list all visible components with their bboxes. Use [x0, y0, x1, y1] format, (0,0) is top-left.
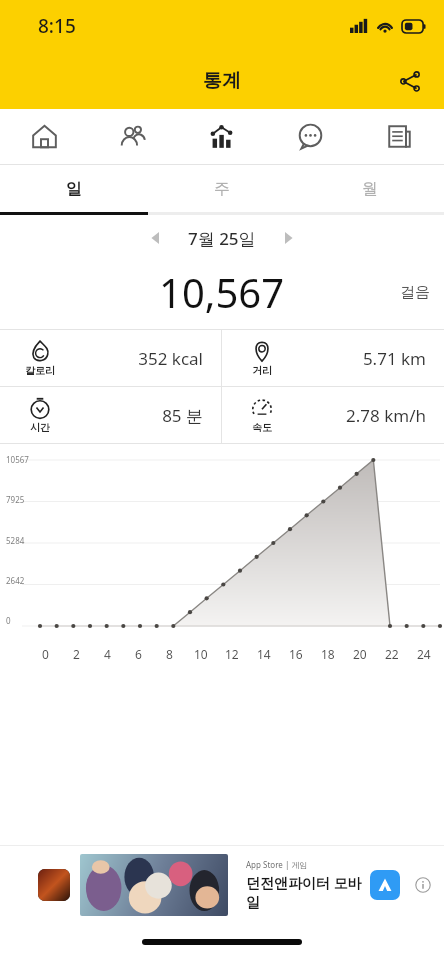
button[interactable]: App Store | 게임 [0, 846, 444, 924]
staticText: 16 [289, 646, 303, 662]
staticText: 2.78 km/h [284, 404, 426, 427]
button[interactable]: News [355, 109, 444, 164]
button[interactable]: Home [0, 109, 88, 164]
staticText: 5.71 km [284, 347, 426, 370]
button[interactable]: 거리 [222, 330, 444, 386]
staticText: 일 [66, 179, 82, 199]
button[interactable]: 일 [0, 165, 148, 212]
staticText: 5284 [6, 535, 25, 546]
staticText: 10567 [6, 454, 29, 465]
staticText: 8:15 [38, 13, 76, 39]
staticText: 걸음 [400, 283, 430, 302]
staticText: 시간 [30, 421, 50, 434]
staticText: 속도 [252, 421, 272, 434]
staticText: 던전앤파이터 모바일 [246, 873, 370, 911]
staticText: 85 분 [62, 404, 203, 427]
button[interactable]: 칼로리 [0, 330, 221, 386]
staticText: 7925 [6, 494, 25, 505]
button[interactable]: 월 [296, 165, 444, 212]
staticText: 7월 25일 [188, 227, 256, 250]
staticText: 4 [104, 646, 111, 662]
button[interactable]: Statistics [177, 109, 266, 164]
staticText: 통계 [203, 69, 241, 93]
button[interactable]: 주 [148, 165, 296, 212]
staticText: 칼로리 [25, 364, 55, 377]
staticText: 2642 [6, 575, 25, 586]
staticText: 10,567 [159, 265, 285, 319]
staticText: 2 [73, 646, 80, 662]
button[interactable]: 속도 [222, 387, 444, 443]
staticText: 6 [135, 646, 142, 662]
staticText: 주 [214, 179, 230, 199]
button[interactable]: 시간 [0, 387, 221, 443]
staticText: 22 [385, 646, 399, 662]
staticText: 거리 [252, 364, 272, 377]
staticText: 10 [194, 646, 208, 662]
staticText: 월 [362, 179, 378, 199]
staticText: 8 [166, 646, 173, 662]
staticText: 0 [42, 646, 49, 662]
staticText: 14 [257, 646, 271, 662]
staticText: 12 [225, 646, 239, 662]
staticText: 352 kcal [62, 347, 203, 370]
button[interactable]: Previous day [136, 218, 176, 258]
button[interactable]: Friends [88, 109, 177, 164]
staticText: 18 [321, 646, 335, 662]
button[interactable]: Share [388, 59, 432, 103]
button[interactable]: Ad info [412, 874, 434, 896]
staticText: 24 [417, 646, 431, 662]
staticText: App Store | 게임 [246, 859, 308, 870]
staticText: 0 [6, 615, 11, 626]
staticText: 20 [353, 646, 367, 662]
button[interactable]: Chat [266, 109, 355, 164]
button[interactable]: Next day [268, 218, 308, 258]
